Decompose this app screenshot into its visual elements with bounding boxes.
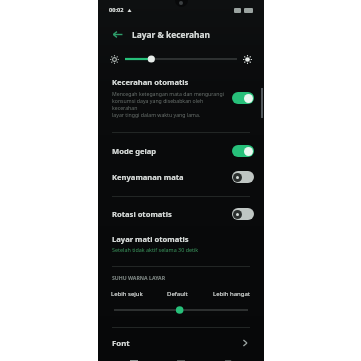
staticText: Lebih sejuk	[111, 290, 143, 298]
button[interactable]: Mode gelap	[98, 139, 264, 163]
staticText: Default	[167, 290, 188, 298]
button[interactable]: Toggle off	[232, 208, 254, 220]
staticText: Mencegah ketegangan mata dan mengurangi	[112, 90, 224, 97]
staticText: Layar mati otomatis	[112, 234, 189, 244]
button[interactable]: Font	[98, 328, 264, 358]
button[interactable]: Kecerahan otomatis	[98, 75, 264, 122]
button[interactable]: Toggle on	[232, 145, 254, 157]
button[interactable]: Layar mati otomatis	[98, 230, 264, 258]
staticText: 00:02	[109, 6, 124, 14]
button[interactable]: Back	[108, 25, 126, 43]
staticText: konsumsi daya yang disebabkan oleh kecer…	[112, 97, 226, 111]
staticText: Lebih hangat	[213, 290, 251, 298]
staticText: SUHU WARNA LAYAR	[112, 274, 166, 281]
other: Open font settings	[238, 336, 252, 350]
button[interactable]: Kenyamanan mata	[98, 165, 264, 189]
staticText: Kecerahan otomatis	[112, 77, 189, 87]
staticText: Font	[112, 338, 130, 349]
staticText: Rotasi otomatis	[112, 209, 172, 219]
staticText: Layar & kecerahan	[132, 29, 211, 40]
staticText: Mode gelap	[112, 146, 157, 156]
button[interactable]: Toggle on	[232, 92, 254, 104]
staticText: Kenyamanan mata	[112, 172, 184, 182]
button[interactable]: Rotasi otomatis	[98, 202, 264, 226]
button[interactable]: Toggle off	[232, 171, 254, 183]
staticText: Setelah tidak aktif selama 30 detik	[112, 246, 199, 253]
staticText: layar tinggi dalam waktu yang lama.	[112, 111, 201, 118]
